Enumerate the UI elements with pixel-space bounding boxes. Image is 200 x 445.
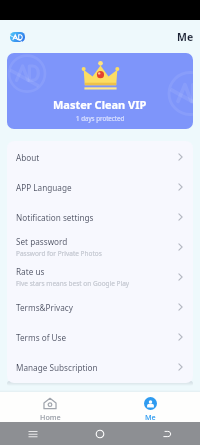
staticText: Notification settings [16,212,94,223]
staticText: Master Clean VIP [53,97,147,112]
staticText: Home [40,412,61,422]
button[interactable]: Terms&Privacy [7,292,193,322]
button[interactable]: About [7,142,193,172]
button[interactable]: Notification settings [7,202,193,232]
staticText: Five stars means best on Google Play [16,279,130,288]
staticText: Password for Private Photos [16,249,102,258]
button[interactable]: Terms of Use [7,322,193,352]
button[interactable]: Rate us [7,262,193,292]
staticText: Rate us [16,266,45,277]
staticText: Manage Subscription [16,362,98,373]
button[interactable]: APP Language [7,172,193,202]
button[interactable]: Manage Subscription [7,352,193,382]
button[interactable]: Home [0,392,100,422]
staticText: About [16,152,40,163]
staticText: 1 days protected [76,114,125,122]
button[interactable]: Master Clean VIP [7,53,193,129]
staticText: Terms of Use [16,332,67,343]
staticText: Set password [16,236,68,247]
button[interactable]: Set password [7,232,193,262]
button[interactable]: Me [100,392,200,422]
staticText: Me [145,412,156,422]
staticText: Me [177,30,194,44]
other: Home [95,429,105,439]
staticText: APP Language [16,182,72,193]
other: Back [162,429,172,439]
staticText: Terms&Privacy [16,302,73,313]
button[interactable]: App logo [10,32,25,42]
other: Menu [28,429,38,439]
